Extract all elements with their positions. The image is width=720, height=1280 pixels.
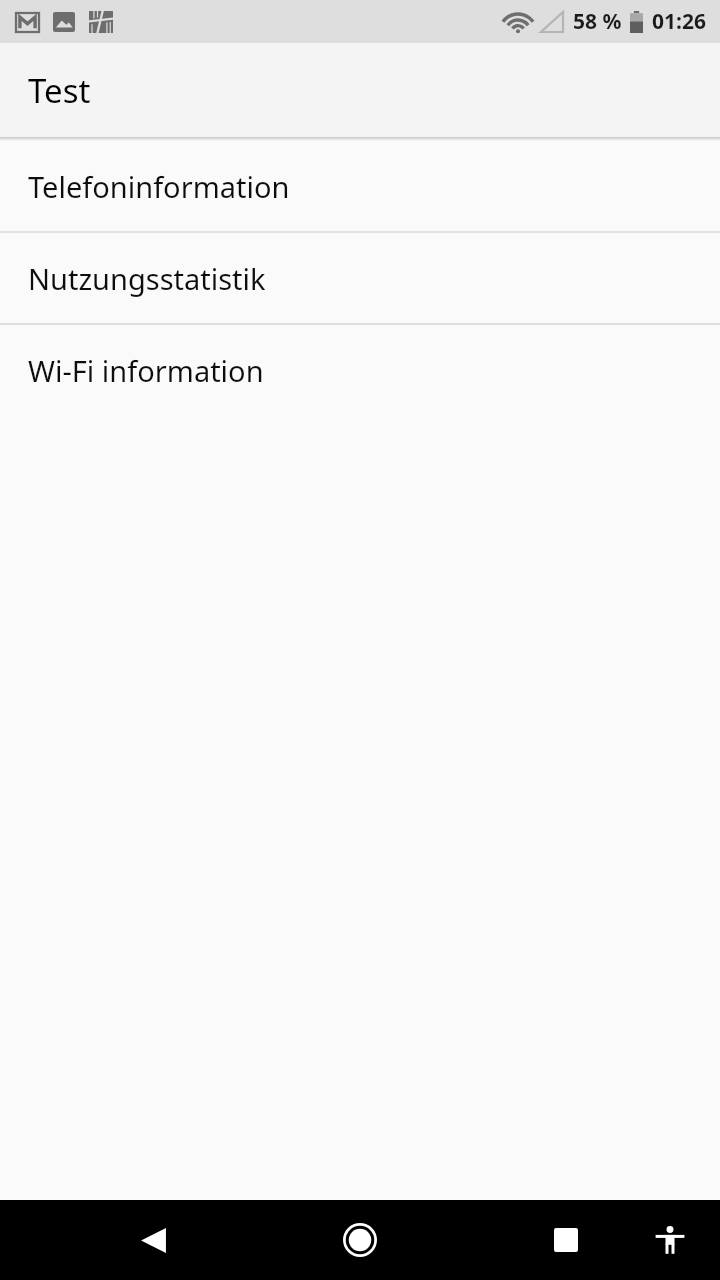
button[interactable]: Nutzungsstatistik (0, 233, 720, 323)
staticText: Telefoninformation (28, 167, 290, 206)
button[interactable]: Telefoninformation (0, 141, 720, 231)
staticText: Wi-Fi information (28, 351, 264, 390)
staticText: 01:26 (652, 7, 706, 36)
button[interactable]: Home (330, 1210, 390, 1270)
staticText: Nutzungsstatistik (28, 259, 266, 298)
staticText: 58 % (573, 7, 622, 36)
button[interactable]: Wi-Fi information (0, 325, 720, 415)
staticText: Test (28, 68, 91, 113)
button[interactable]: Accessibility (640, 1210, 700, 1270)
button[interactable]: Back (123, 1210, 183, 1270)
button[interactable]: Recent apps (536, 1210, 596, 1270)
